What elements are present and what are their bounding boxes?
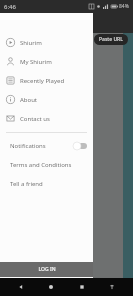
- staticText: About: [20, 96, 38, 104]
- staticText: 84%: [119, 3, 129, 10]
- button[interactable]: Toggle notifications: [73, 142, 87, 150]
- staticText: Recently Played: [20, 77, 65, 85]
- button[interactable]: Recently Played: [0, 71, 93, 90]
- staticText: Shiurim: [20, 39, 42, 47]
- staticText: LOG IN: [38, 266, 56, 273]
- button[interactable]: Terms and Conditions: [0, 155, 93, 174]
- staticText: 6:46: [4, 3, 16, 11]
- staticText: Paste URL: [99, 36, 123, 43]
- button[interactable]: Home: [46, 282, 56, 292]
- staticText: Notifications: [10, 142, 46, 150]
- button[interactable]: LOG IN: [0, 262, 93, 277]
- button[interactable]: Shiurim: [0, 33, 93, 52]
- button[interactable]: Recent apps: [77, 282, 87, 292]
- staticText: Contact us: [20, 115, 50, 123]
- staticText: Tell a friend: [10, 180, 43, 188]
- button[interactable]: Contact us: [0, 109, 93, 128]
- staticText: Terms and Conditions: [10, 161, 72, 169]
- button[interactable]: Back: [16, 282, 26, 292]
- button[interactable]: My Shiurim: [0, 52, 93, 71]
- button[interactable]: About: [0, 90, 93, 109]
- button[interactable]: Tell a friend: [0, 174, 93, 193]
- button[interactable]: Keyboard: [107, 282, 117, 292]
- staticText: My Shiurim: [20, 58, 52, 66]
- button[interactable]: Paste URL: [94, 34, 128, 45]
- button[interactable]: Notifications: [0, 136, 93, 155]
